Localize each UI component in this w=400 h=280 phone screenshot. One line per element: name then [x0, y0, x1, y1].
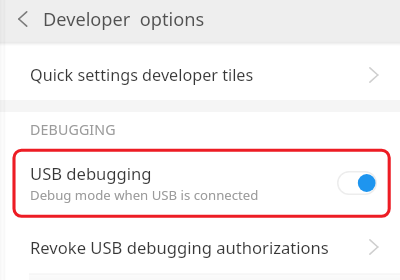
button[interactable]: Revoke USB debugging authorizations — [0, 216, 400, 276]
staticText: Revoke USB debugging authorizations — [30, 236, 329, 259]
button[interactable]: Quick settings developer tiles — [0, 44, 400, 100]
staticText: Quick settings developer tiles — [30, 64, 254, 86]
button[interactable]: USB debugging toggle — [337, 171, 377, 195]
staticText: DEBUGGING — [30, 120, 116, 139]
button[interactable]: USB debugging — [0, 150, 400, 216]
staticText: Debug mode when USB is connected — [30, 186, 259, 204]
staticText: Developer options — [43, 7, 205, 32]
staticText: USB debugging — [30, 162, 152, 185]
button[interactable]: Back — [0, 0, 44, 44]
